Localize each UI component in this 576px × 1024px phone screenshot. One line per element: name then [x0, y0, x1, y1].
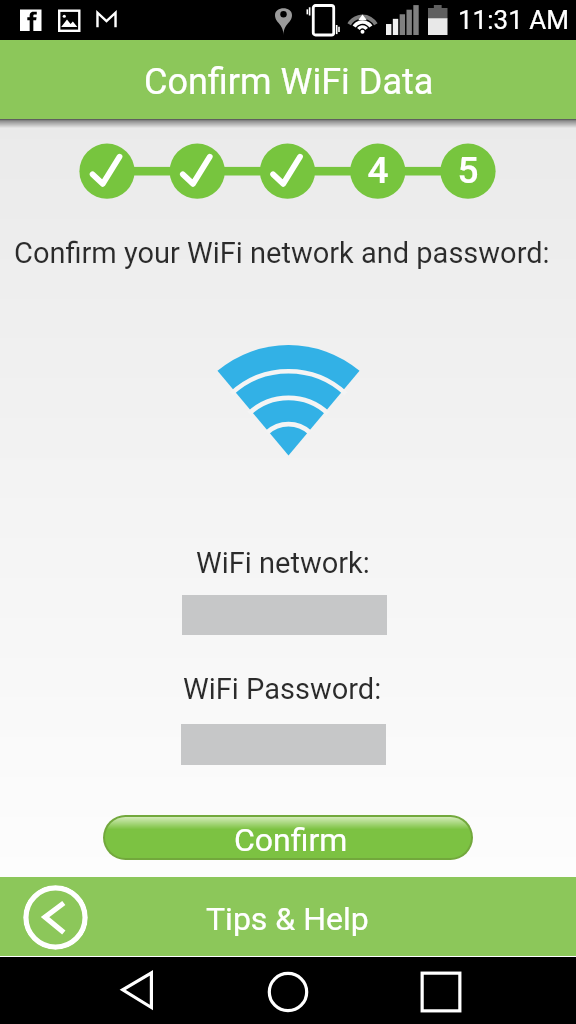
button[interactable]: Recent apps	[411, 960, 471, 1020]
staticText: 4	[367, 149, 389, 192]
staticText: 5	[457, 149, 479, 192]
button[interactable]: Back	[23, 885, 88, 950]
staticText: Tips & Help	[206, 900, 369, 938]
staticText: Confirm your WiFi network and password:	[14, 236, 550, 270]
staticText: Confirm WiFi Data	[144, 61, 434, 103]
staticText: WiFi network:	[196, 546, 370, 580]
button[interactable]	[105, 817, 471, 858]
button[interactable]: Back	[106, 960, 166, 1020]
staticText: Confirm	[234, 821, 348, 859]
staticText: 11:31 AM	[458, 5, 569, 35]
button[interactable]: Home	[258, 960, 318, 1020]
staticText: WiFi Password:	[183, 672, 382, 706]
